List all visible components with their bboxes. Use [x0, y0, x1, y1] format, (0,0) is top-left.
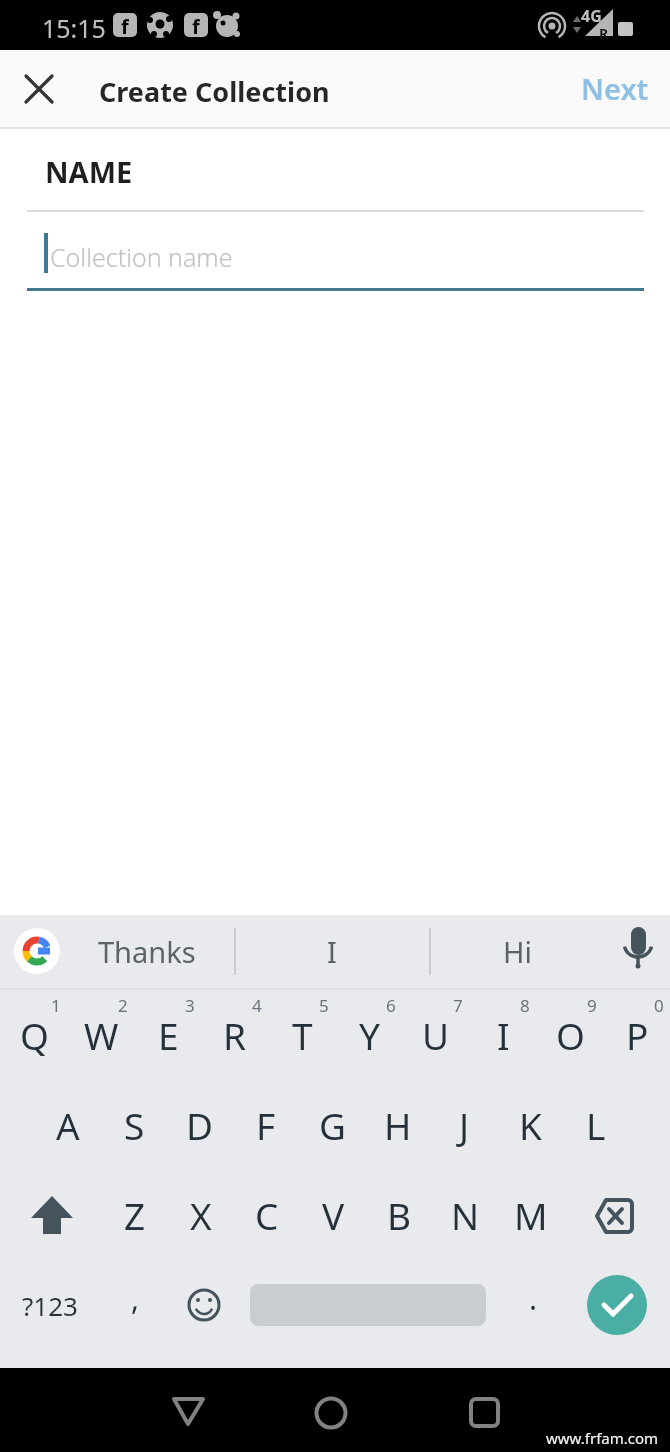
button[interactable]: C	[234, 1170, 300, 1260]
button[interactable]: A	[35, 1080, 101, 1170]
staticText: C	[255, 1190, 279, 1240]
staticText: R	[599, 24, 609, 43]
staticText: M	[514, 1190, 548, 1240]
button[interactable]: G	[299, 1080, 365, 1170]
staticText: Z	[124, 1190, 146, 1240]
staticText: Next	[581, 69, 649, 108]
staticText: F	[256, 1100, 276, 1150]
staticText: www.frfam.com	[546, 1428, 659, 1448]
button[interactable]: Y	[336, 990, 402, 1080]
button[interactable]: F	[233, 1080, 299, 1170]
staticText: 6	[386, 994, 396, 1017]
staticText: ,	[131, 1278, 140, 1319]
button[interactable]: Next	[570, 60, 660, 116]
button[interactable]: B	[366, 1170, 432, 1260]
staticText: 1	[51, 994, 61, 1017]
button[interactable]: L	[563, 1080, 629, 1170]
staticText: I	[497, 1010, 510, 1060]
staticText: f	[192, 13, 200, 37]
staticText: V	[322, 1190, 345, 1240]
button[interactable]	[614, 928, 662, 976]
staticText: 7	[453, 994, 463, 1017]
button[interactable]: S	[101, 1080, 167, 1170]
button[interactable]: U	[403, 990, 469, 1080]
staticText: Create Collection	[99, 73, 330, 110]
button[interactable]: V	[300, 1170, 366, 1260]
button[interactable]: D	[167, 1080, 233, 1170]
staticText: f	[121, 13, 129, 37]
button[interactable]	[305, 1380, 365, 1440]
button[interactable]: K	[497, 1080, 563, 1170]
staticText: I	[327, 932, 337, 971]
staticText: 3	[185, 994, 195, 1017]
staticText: ?123	[22, 1288, 78, 1323]
button[interactable]: O	[537, 990, 603, 1080]
staticText: 9	[587, 994, 597, 1017]
button[interactable]: J	[431, 1080, 497, 1170]
button[interactable]: ,	[102, 1253, 168, 1343]
staticText: B	[387, 1190, 412, 1240]
button[interactable]: Thanks	[82, 915, 212, 988]
button[interactable]	[171, 1260, 237, 1350]
button[interactable]: I	[470, 990, 536, 1080]
staticText: U	[422, 1010, 450, 1060]
staticText: J	[459, 1100, 470, 1150]
button[interactable]: ?123	[17, 1260, 83, 1350]
staticText: T	[292, 1010, 313, 1060]
button[interactable]	[159, 1380, 219, 1440]
staticText: Hi	[503, 932, 532, 971]
staticText: Y	[359, 1010, 380, 1060]
button[interactable]: I	[267, 915, 397, 988]
button[interactable]	[451, 1380, 511, 1440]
button[interactable]: R	[202, 990, 268, 1080]
button[interactable]: Z	[102, 1170, 168, 1260]
staticText: NAME	[45, 152, 133, 191]
staticText: E	[158, 1010, 179, 1060]
button[interactable]	[587, 1275, 647, 1335]
button[interactable]	[18, 68, 60, 110]
button[interactable]: E	[135, 990, 201, 1080]
staticText: P	[626, 1010, 649, 1060]
staticText: D	[186, 1100, 214, 1150]
staticText: W	[84, 1010, 119, 1060]
button[interactable]: P	[604, 990, 670, 1080]
staticText: 15:15	[42, 11, 106, 45]
staticText: N	[451, 1190, 480, 1240]
staticText: G	[319, 1100, 346, 1150]
staticText: 0	[654, 994, 664, 1017]
staticText: 4	[252, 994, 262, 1017]
staticText: O	[556, 1010, 585, 1060]
button[interactable]: T	[269, 990, 335, 1080]
button[interactable]: W	[68, 990, 134, 1080]
staticText: Q	[20, 1010, 49, 1060]
staticText: H	[384, 1100, 412, 1150]
staticText: 4G	[581, 5, 602, 27]
staticText: K	[519, 1100, 542, 1150]
staticText: S	[124, 1100, 145, 1150]
button[interactable]	[14, 928, 60, 974]
staticText: 5	[319, 994, 329, 1017]
button[interactable]: Collection name	[27, 225, 644, 288]
button[interactable]	[582, 1170, 648, 1260]
staticText: Collection name	[50, 240, 233, 274]
staticText: 8	[520, 994, 530, 1017]
staticText: A	[56, 1100, 80, 1150]
button[interactable]: X	[168, 1170, 234, 1260]
button[interactable]	[19, 1170, 85, 1260]
button[interactable]: H	[365, 1080, 431, 1170]
staticText: 2	[118, 994, 128, 1017]
staticText: L	[586, 1100, 606, 1150]
staticText: Thanks	[98, 932, 196, 971]
staticText: R	[223, 1010, 247, 1060]
button[interactable]: N	[432, 1170, 498, 1260]
button[interactable]: M	[498, 1170, 564, 1260]
button[interactable]: Q	[1, 990, 67, 1080]
button[interactable]: .	[500, 1253, 566, 1343]
staticText: .	[529, 1278, 538, 1319]
button[interactable]: Hi	[452, 915, 582, 988]
staticText: X	[190, 1190, 212, 1240]
